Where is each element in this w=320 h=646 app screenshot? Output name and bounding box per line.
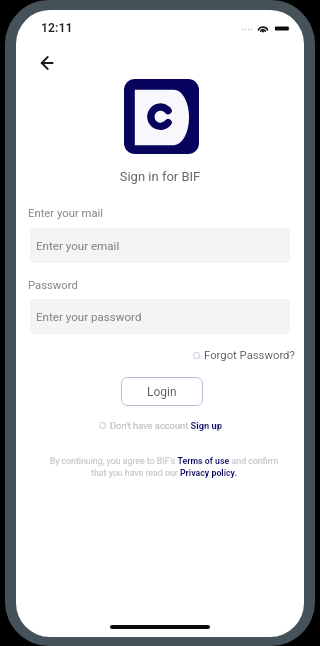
- staticText: Login: [147, 385, 177, 399]
- staticText: Don't have account Sign up: [110, 420, 222, 431]
- button[interactable]: Forgot Password?: [193, 347, 295, 364]
- staticText: Enter your password: [36, 310, 142, 324]
- staticText: Sign in for BIF: [16, 169, 304, 184]
- button[interactable]: Back: [31, 47, 63, 79]
- button[interactable]: Login: [121, 377, 203, 406]
- staticText: Forgot Password?: [204, 349, 295, 362]
- staticText: Enter your mail: [28, 207, 104, 220]
- button[interactable]: Enter your password: [30, 299, 290, 334]
- staticText: Enter your email: [36, 239, 120, 253]
- staticText: By continuing, you agree to BIF's Terms …: [20, 456, 304, 478]
- staticText: 12:11: [41, 21, 73, 35]
- button[interactable]: Enter your email: [30, 228, 290, 263]
- staticText: Password: [28, 279, 78, 292]
- button[interactable]: Don't have account Sign up: [99, 418, 222, 433]
